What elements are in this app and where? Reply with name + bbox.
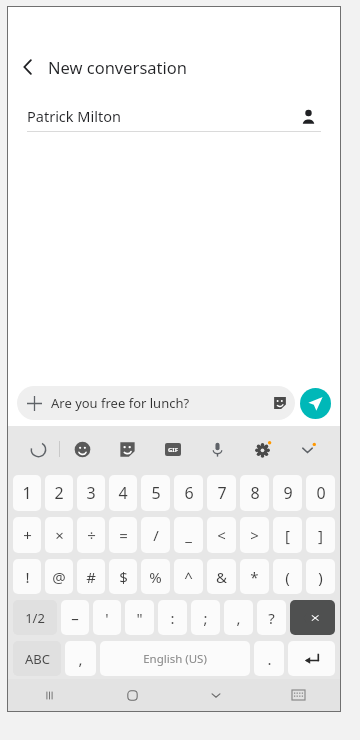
button[interactable]: Collapse keyboard: [285, 426, 330, 472]
button[interactable]: 7: [207, 475, 236, 511]
button[interactable]: Add recipient: [295, 103, 321, 129]
staticText: ×: [55, 525, 64, 545]
button[interactable]: ;: [191, 600, 220, 635]
staticText: 3: [86, 482, 96, 504]
button[interactable]: _: [174, 517, 203, 553]
button[interactable]: 8: [240, 475, 269, 511]
button[interactable]: <: [207, 517, 236, 553]
button[interactable]: *: [240, 559, 269, 594]
staticText: 8: [250, 482, 260, 504]
button[interactable]: –: [61, 600, 89, 635]
button[interactable]: Are you free for lunch?: [17, 386, 295, 420]
button[interactable]: Stickers: [265, 386, 295, 420]
button[interactable]: ,: [224, 600, 253, 635]
button[interactable]: !: [13, 559, 41, 594]
staticText: 7: [217, 482, 227, 504]
button[interactable]: #: [77, 559, 105, 594]
button[interactable]: Voice input: [195, 426, 240, 472]
button[interactable]: English (US): [100, 641, 250, 676]
button[interactable]: 0: [306, 475, 335, 511]
button[interactable]: >: [240, 517, 269, 553]
button[interactable]: ABC: [13, 641, 61, 676]
button[interactable]: $: [109, 559, 137, 594]
staticText: ÷: [87, 525, 96, 545]
button[interactable]: ): [306, 559, 335, 594]
staticText: ?: [268, 608, 275, 628]
button[interactable]: Home: [91, 679, 174, 711]
button[interactable]: +: [13, 517, 41, 553]
button[interactable]: Settings: [240, 426, 285, 472]
button[interactable]: 3: [77, 475, 105, 511]
staticText: Patrick Milton: [27, 106, 295, 126]
staticText: $: [119, 567, 128, 587]
staticText: +: [23, 525, 32, 545]
staticText: >: [250, 525, 259, 545]
staticText: ,: [236, 608, 241, 628]
button[interactable]: ×: [45, 517, 73, 553]
staticText: ): [318, 567, 323, 587]
button[interactable]: Send: [300, 388, 331, 419]
staticText: .: [267, 649, 272, 669]
button[interactable]: Enter: [288, 641, 335, 676]
button[interactable]: Stickers: [105, 426, 150, 472]
button[interactable]: @: [45, 559, 73, 594]
staticText: 6: [184, 482, 194, 504]
button[interactable]: Translate: [18, 426, 59, 472]
button[interactable]: Emoji: [60, 426, 105, 472]
button[interactable]: (: [273, 559, 302, 594]
staticText: &: [216, 567, 227, 587]
button[interactable]: 6: [174, 475, 203, 511]
button[interactable]: .: [254, 641, 284, 676]
staticText: 5: [151, 482, 161, 504]
staticText: 0: [316, 482, 326, 504]
staticText: *: [250, 567, 259, 587]
button[interactable]: /: [141, 517, 170, 553]
staticText: ,: [78, 649, 83, 669]
staticText: ;: [203, 608, 208, 628]
button[interactable]: 1: [13, 475, 41, 511]
button[interactable]: Back: [174, 679, 257, 711]
button[interactable]: &: [207, 559, 236, 594]
button[interactable]: 1/2: [13, 600, 57, 635]
button[interactable]: ^: [174, 559, 203, 594]
button[interactable]: ": [125, 600, 154, 635]
staticText: 9: [283, 482, 293, 504]
staticText: %: [149, 567, 162, 587]
staticText: ^: [184, 567, 193, 587]
staticText: 2: [54, 482, 64, 504]
staticText: New conversation: [48, 56, 187, 78]
button[interactable]: [: [273, 517, 302, 553]
staticText: ': [105, 608, 109, 628]
staticText: =: [119, 525, 128, 545]
button[interactable]: %: [141, 559, 170, 594]
staticText: <: [217, 525, 226, 545]
button[interactable]: ,: [65, 641, 96, 676]
staticText: ABC: [25, 650, 50, 668]
staticText: 1/2: [25, 609, 45, 627]
staticText: GIF: [168, 446, 178, 454]
button[interactable]: GIF: [150, 426, 195, 472]
button[interactable]: ]: [306, 517, 335, 553]
staticText: (: [285, 567, 290, 587]
button[interactable]: Back: [8, 47, 48, 87]
button[interactable]: :: [158, 600, 187, 635]
staticText: [: [285, 525, 290, 545]
staticText: @: [52, 567, 66, 587]
button[interactable]: Recents: [8, 679, 91, 711]
staticText: 4: [118, 482, 128, 504]
staticText: /: [153, 525, 159, 545]
button[interactable]: ÷: [77, 517, 105, 553]
button[interactable]: =: [109, 517, 137, 553]
button[interactable]: ?: [257, 600, 286, 635]
staticText: :: [170, 608, 175, 628]
button[interactable]: 4: [109, 475, 137, 511]
staticText: 1: [22, 482, 32, 504]
staticText: –: [71, 608, 79, 628]
button[interactable]: 2: [45, 475, 73, 511]
button[interactable]: Backspace: [290, 600, 335, 635]
button[interactable]: Hide keyboard: [257, 679, 340, 711]
button[interactable]: ': [93, 600, 121, 635]
button[interactable]: 5: [141, 475, 170, 511]
staticText: ]: [318, 525, 323, 545]
button[interactable]: 9: [273, 475, 302, 511]
